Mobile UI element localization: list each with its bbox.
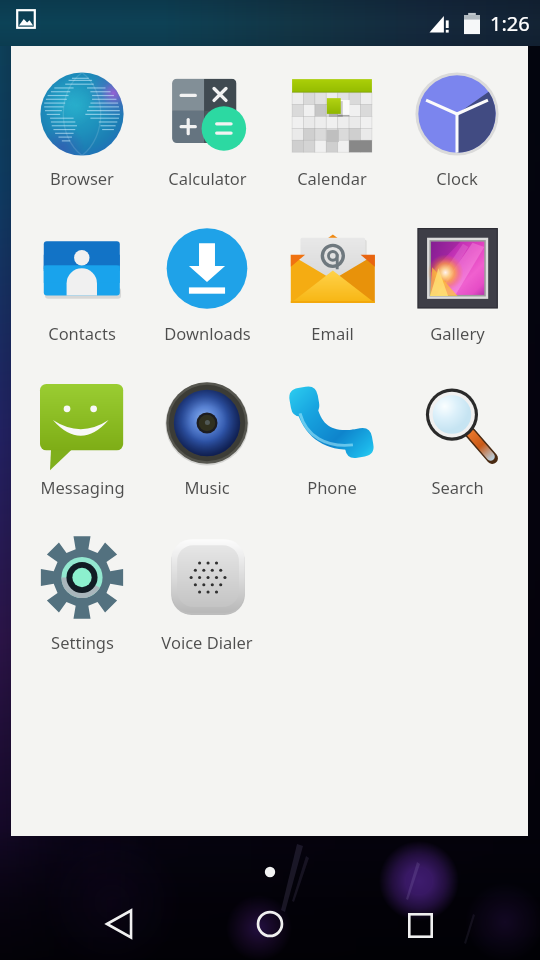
button[interactable]: Browser [21, 62, 143, 190]
button[interactable]: Email [271, 217, 393, 345]
button[interactable]: Downloads [146, 217, 268, 345]
staticText: Phone [307, 476, 357, 498]
button[interactable]: Phone [271, 371, 393, 499]
button[interactable]: Calendar [271, 62, 393, 190]
button[interactable]: Calculator [146, 62, 268, 190]
staticText: Calculator [168, 167, 247, 189]
staticText: Settings [51, 631, 114, 653]
button[interactable]: Settings [21, 526, 143, 654]
button[interactable]: Back [89, 894, 149, 954]
staticText: 1:26 [490, 10, 530, 37]
staticText: Clock [436, 167, 478, 189]
staticText: Email [311, 322, 354, 344]
button[interactable]: Voice Dialer [146, 526, 268, 654]
staticText: Contacts [48, 322, 116, 344]
staticText: Browser [50, 167, 114, 189]
button[interactable]: Home [240, 894, 300, 954]
button[interactable]: Music [146, 371, 268, 499]
button[interactable]: Clock [396, 62, 518, 190]
button[interactable]: Contacts [21, 217, 143, 345]
button[interactable]: Gallery [396, 217, 518, 345]
other: Screenshot captured [15, 8, 37, 30]
staticText: Voice Dialer [161, 631, 253, 653]
staticText: Search [431, 476, 484, 498]
button[interactable]: Messaging [21, 371, 143, 499]
button[interactable]: Recent apps [390, 895, 450, 955]
staticText: Messaging [40, 476, 125, 498]
staticText: Calendar [297, 167, 367, 189]
staticText: Downloads [164, 322, 251, 344]
button[interactable]: Search [396, 371, 518, 499]
staticText: Music [184, 476, 230, 498]
staticText: Gallery [430, 322, 485, 344]
